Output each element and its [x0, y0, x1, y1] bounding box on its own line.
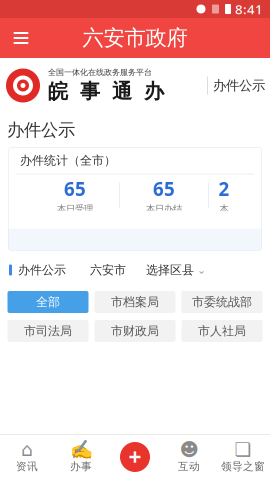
button[interactable]: 市委统战部: [181, 291, 262, 313]
button[interactable]: 选择区县: [146, 256, 206, 284]
staticText: 办件公示: [18, 263, 66, 277]
staticText: 互动: [178, 460, 200, 473]
staticText: 办件统计（全市）: [20, 153, 116, 168]
button[interactable]: Add: [108, 434, 162, 480]
staticText: ❏: [234, 439, 251, 460]
staticText: 2: [218, 176, 229, 201]
staticText: 领导之窗: [221, 460, 265, 473]
staticText: 市财政局: [111, 324, 159, 338]
staticText: 本: [219, 203, 228, 215]
button[interactable]: 市人社局: [181, 320, 262, 342]
staticText: 市司法局: [24, 324, 72, 338]
staticText: 办件公示: [213, 77, 265, 94]
staticText: 本日受理: [57, 203, 93, 215]
staticText: 8:41: [235, 0, 263, 18]
staticText: 办件公示: [7, 119, 75, 141]
button[interactable]: 全部: [7, 291, 88, 313]
staticText: 六安市: [90, 263, 126, 277]
staticText: ⌂: [21, 439, 33, 460]
staticText: 资讯: [16, 460, 38, 473]
staticText: 市人社局: [198, 324, 246, 338]
button[interactable]: Menu: [0, 18, 42, 58]
staticText: 选择区县: [146, 263, 194, 277]
button[interactable]: 市财政局: [94, 320, 175, 342]
staticText: 本日办结: [146, 203, 182, 215]
button[interactable]: 六安市: [90, 256, 126, 284]
button[interactable]: ✍: [54, 434, 108, 480]
staticText: 全国一体化在线政务服务平台: [48, 67, 152, 77]
staticText: 65: [64, 176, 86, 201]
button[interactable]: ☻: [162, 434, 216, 480]
staticText: 市档案局: [111, 295, 159, 309]
staticText: 办事: [70, 460, 92, 473]
button[interactable]: ⌂: [0, 434, 54, 480]
staticText: 全部: [36, 295, 60, 309]
button[interactable]: 市档案局: [94, 291, 175, 313]
staticText: ⌄: [197, 264, 206, 276]
button[interactable]: ❏: [216, 434, 270, 480]
staticText: 市委统战部: [192, 295, 252, 309]
staticText: +: [128, 442, 141, 472]
button[interactable]: 办件公示: [208, 65, 270, 105]
staticText: 65: [153, 176, 175, 201]
staticText: 六安市政府: [82, 25, 187, 51]
staticText: 皖 事 通 办: [48, 79, 164, 104]
staticText: ✍: [69, 439, 92, 460]
staticText: ☻: [179, 439, 198, 460]
button[interactable]: 市司法局: [7, 320, 88, 342]
